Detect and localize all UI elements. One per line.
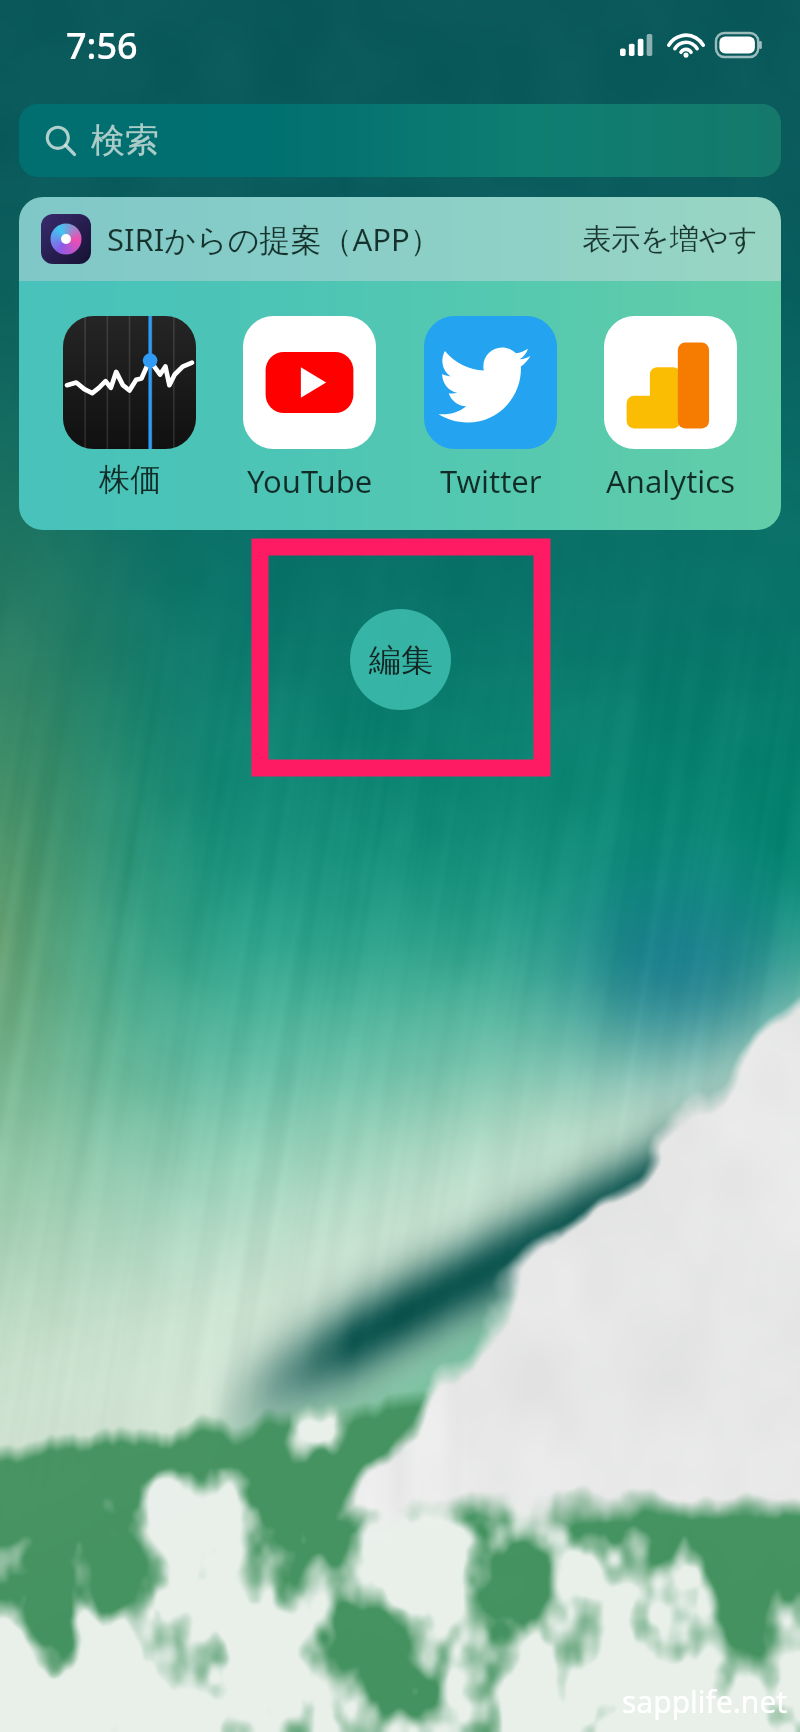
button[interactable]: 表示を増やす [582, 221, 759, 258]
button[interactable]: 検索 [19, 104, 781, 177]
button[interactable]: Analytics [600, 316, 741, 502]
staticText: Twitter [440, 460, 542, 502]
button[interactable]: 編集 [350, 609, 451, 710]
staticText: SIRIからの提案（APP） [107, 218, 441, 260]
button[interactable]: SIRIからの提案（APP） [19, 197, 781, 281]
staticText: Analytics [606, 460, 736, 502]
staticText: 7:56 [66, 21, 138, 70]
staticText: YouTube [247, 460, 373, 502]
staticText: 株価 [99, 460, 161, 499]
staticText: sapplife.net [622, 1681, 788, 1722]
button[interactable]: 株価 [59, 316, 200, 499]
staticText: 検索 [91, 119, 159, 162]
staticText: 編集 [369, 640, 433, 680]
button[interactable]: Twitter [420, 316, 561, 502]
button[interactable]: YouTube [239, 316, 380, 502]
